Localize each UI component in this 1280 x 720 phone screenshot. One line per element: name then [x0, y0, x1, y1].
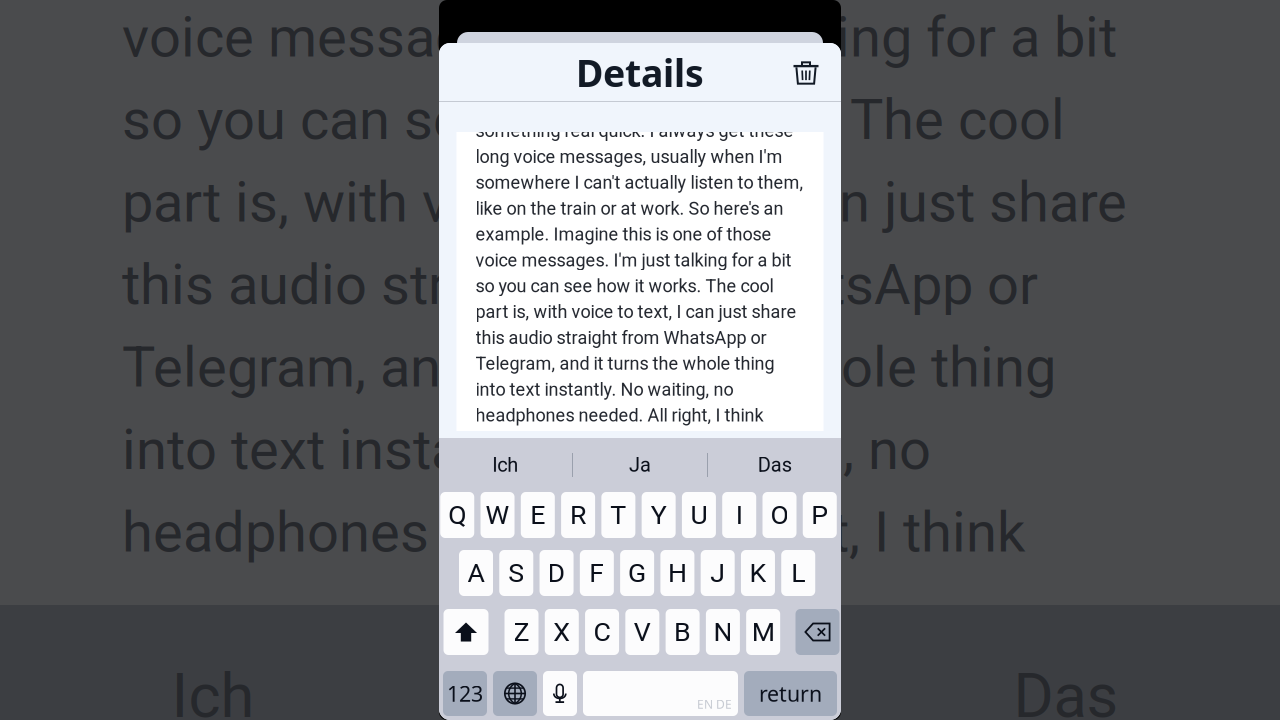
button[interactable]: Space [583, 671, 738, 716]
staticText: this audio straight from WhatsApp or [475, 327, 766, 348]
staticText: EN DE [697, 696, 732, 712]
staticText: U [690, 499, 707, 531]
staticText: A [467, 557, 484, 589]
staticText: D [548, 557, 566, 589]
staticText: Ja [605, 660, 672, 720]
button[interactable]: E [521, 492, 555, 538]
staticText: Das [758, 453, 792, 477]
button[interactable]: Y [642, 492, 676, 538]
button[interactable]: Switch keyboard [493, 671, 537, 716]
staticText: G [628, 557, 646, 589]
staticText: this audio straight from WhatsApp or [122, 252, 1038, 317]
staticText: so you can see how it works. The cool [475, 275, 773, 297]
button[interactable]: J [701, 550, 735, 596]
button[interactable]: Dictate [543, 671, 577, 716]
staticText: voice messages. I'm just talking for a b… [122, 4, 1117, 70]
button[interactable]: W [480, 492, 514, 538]
button[interactable]: G [620, 550, 654, 596]
staticText: part is, with voice to text, I can just … [475, 301, 796, 322]
staticText: H [668, 557, 687, 589]
staticText: B [674, 616, 691, 648]
staticText: Q [448, 499, 466, 531]
staticText: M [752, 616, 775, 648]
staticText: 123 [447, 679, 483, 708]
button[interactable]: L [781, 550, 815, 596]
button[interactable]: Das [708, 438, 841, 492]
staticText: Z [513, 616, 529, 648]
staticText: Ich [171, 660, 254, 720]
staticText: P [811, 499, 828, 531]
staticText: R [570, 499, 586, 531]
staticText: S [508, 557, 524, 589]
staticText: F [589, 557, 604, 589]
button[interactable]: C [585, 609, 619, 655]
button[interactable]: A [459, 550, 493, 596]
button[interactable]: V [625, 609, 659, 655]
staticText: L [791, 557, 805, 589]
staticText: something real quick. I always get these [475, 120, 793, 141]
button[interactable]: K [741, 550, 775, 596]
button[interactable]: M [746, 609, 780, 655]
button[interactable]: X [545, 609, 579, 655]
button[interactable]: B [666, 609, 700, 655]
button[interactable]: Ich [438, 438, 572, 492]
button[interactable]: N [706, 609, 740, 655]
staticText: Details [576, 48, 704, 97]
staticText: like on the train or at work. So here's … [475, 198, 783, 219]
staticText: O [770, 499, 788, 531]
staticText: N [713, 616, 732, 648]
button[interactable]: P [803, 492, 837, 538]
staticText: return [759, 679, 822, 708]
staticText: example. Imagine this is one of those [475, 224, 771, 245]
staticText: so you can see how it works. The cool [122, 87, 1065, 152]
button[interactable]: Q [440, 492, 474, 538]
staticText: into text instantly. No waiting, no [122, 417, 931, 482]
staticText: Telegram, and it turns the whole thing [475, 353, 774, 374]
button[interactable]: O [762, 492, 796, 538]
staticText: somewhere I can't actually listen to the… [475, 172, 803, 193]
staticText: W [485, 499, 509, 531]
button[interactable]: T [601, 492, 635, 538]
staticText: headphones needed. All right, I think [475, 405, 763, 426]
staticText: I [736, 499, 743, 531]
staticText: Ja [629, 453, 651, 477]
staticText: Y [651, 499, 667, 531]
staticText: long voice messages, usually when I'm [475, 146, 782, 167]
button[interactable]: R [561, 492, 595, 538]
staticText: T [610, 499, 626, 531]
staticText: C [594, 616, 611, 648]
staticText: Das [1013, 660, 1118, 720]
button[interactable]: Delete [789, 55, 823, 89]
staticText: K [749, 557, 766, 589]
button[interactable]: Ja [573, 438, 707, 492]
button[interactable]: return [744, 671, 837, 716]
staticText: V [634, 616, 651, 648]
button[interactable]: I [722, 492, 756, 538]
button[interactable]: Z [504, 609, 538, 655]
button[interactable]: F [580, 550, 614, 596]
staticText: voice messages. I'm just talking for a b… [475, 250, 791, 271]
staticText: headphones needed. All right, I think [122, 499, 1025, 565]
button[interactable]: H [660, 550, 694, 596]
staticText: Telegram, and it turns the whole thing [122, 334, 1056, 400]
staticText: E [530, 499, 545, 531]
staticText: Ich [492, 453, 518, 477]
button[interactable]: Shift [443, 609, 488, 655]
button[interactable]: U [682, 492, 716, 538]
button[interactable]: 123 [443, 671, 487, 716]
staticText: into text instantly. No waiting, no [475, 379, 733, 400]
button[interactable]: Backspace [795, 609, 839, 655]
staticText: J [710, 557, 725, 589]
staticText: part is, with voice to text, I can just … [122, 169, 1127, 235]
staticText: X [553, 616, 570, 648]
button[interactable]: S [499, 550, 533, 596]
button[interactable]: D [540, 550, 574, 596]
